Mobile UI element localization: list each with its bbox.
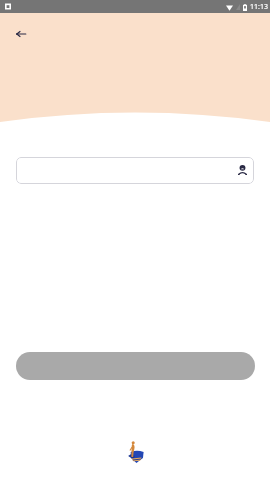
button[interactable]: Back <box>5 18 37 50</box>
staticText: 11:13 <box>250 2 268 12</box>
button[interactable] <box>16 157 254 184</box>
button[interactable] <box>16 352 255 380</box>
